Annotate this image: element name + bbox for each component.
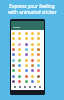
- button[interactable]: [12, 59, 15, 62]
- button[interactable]: [31, 32, 34, 35]
- button[interactable]: [18, 64, 21, 67]
- button[interactable]: [25, 32, 28, 35]
- button[interactable]: [25, 53, 28, 56]
- button[interactable]: [12, 75, 15, 78]
- button[interactable]: [12, 80, 15, 83]
- button[interactable]: [31, 59, 34, 62]
- button[interactable]: [37, 43, 40, 46]
- button[interactable]: [18, 59, 21, 62]
- button[interactable]: [37, 59, 40, 62]
- button[interactable]: [25, 64, 28, 67]
- button[interactable]: [25, 37, 28, 40]
- button[interactable]: [12, 53, 15, 56]
- button[interactable]: [37, 32, 40, 35]
- button[interactable]: [25, 80, 28, 83]
- button[interactable]: [31, 69, 34, 72]
- button[interactable]: [12, 37, 15, 40]
- button[interactable]: [18, 69, 21, 72]
- button[interactable]: [12, 69, 15, 72]
- button[interactable]: [31, 37, 34, 40]
- button[interactable]: [37, 37, 40, 40]
- button[interactable]: [25, 43, 28, 46]
- staticText: with animated sticker: [8, 9, 57, 15]
- button[interactable]: [37, 75, 40, 78]
- button[interactable]: [31, 43, 34, 46]
- button[interactable]: [12, 32, 15, 35]
- button[interactable]: [25, 75, 28, 78]
- button[interactable]: [25, 48, 28, 51]
- button[interactable]: [31, 53, 34, 56]
- button[interactable]: [31, 75, 34, 78]
- button[interactable]: [31, 48, 34, 51]
- button[interactable]: [18, 43, 21, 46]
- button[interactable]: [37, 80, 40, 83]
- button[interactable]: [37, 69, 40, 72]
- button[interactable]: [18, 37, 21, 40]
- button[interactable]: [31, 80, 34, 83]
- button[interactable]: [18, 75, 21, 78]
- button[interactable]: [25, 69, 28, 72]
- staticText: Express your feeling: [9, 3, 55, 9]
- button[interactable]: [25, 59, 28, 62]
- button[interactable]: [18, 80, 21, 83]
- button[interactable]: [12, 43, 15, 46]
- button[interactable]: [37, 48, 40, 51]
- button[interactable]: [12, 64, 15, 67]
- button[interactable]: [18, 32, 21, 35]
- button[interactable]: [12, 48, 15, 51]
- button[interactable]: [18, 53, 21, 56]
- button[interactable]: [37, 64, 40, 67]
- button[interactable]: [18, 48, 21, 51]
- button[interactable]: [37, 53, 40, 56]
- button[interactable]: [31, 64, 34, 67]
